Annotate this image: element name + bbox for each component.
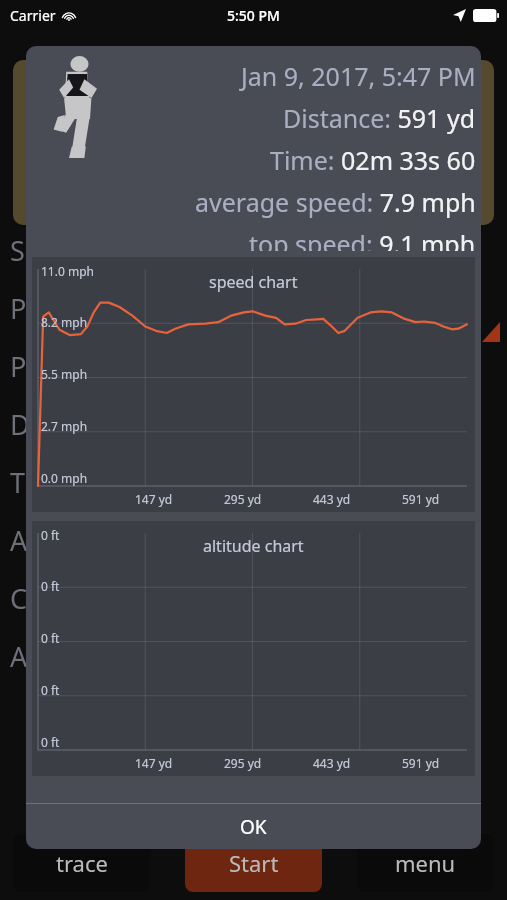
staticText: trace [56, 848, 108, 878]
staticText: 0 ft [41, 682, 60, 698]
staticText: 5:50 PM [227, 6, 280, 25]
staticText: Start [229, 848, 279, 878]
staticText: A [10, 522, 28, 559]
staticText: altitude chart [203, 535, 304, 557]
staticText: 2.7 mph [41, 418, 88, 434]
staticText: 8.2 mph [41, 314, 88, 330]
staticText: P [10, 290, 27, 327]
staticText: T [10, 464, 26, 501]
staticText: 295 yd [224, 755, 262, 771]
staticText: top speed: 9.1 mph [249, 227, 476, 251]
staticText: 295 yd [224, 491, 262, 507]
button[interactable]: menu [357, 834, 494, 892]
staticText: 0 ft [41, 527, 60, 543]
staticText: 11.0 mph [41, 263, 94, 279]
staticText: 591 yd [402, 755, 440, 771]
staticText: 591 yd [402, 491, 440, 507]
staticText: Carrier [10, 6, 56, 25]
button[interactable]: trace [13, 834, 150, 892]
staticText: 0 ft [41, 578, 60, 594]
staticText: Time: 02m 33s 60 [270, 143, 476, 177]
button[interactable]: OK [26, 804, 481, 849]
staticText: average speed: 7.9 mph [195, 185, 476, 219]
staticText: 0 ft [41, 734, 60, 750]
staticText: speed chart [209, 271, 298, 293]
staticText: 0.0 mph [41, 470, 88, 486]
staticText: 5.5 mph [41, 366, 88, 382]
staticText: 147 yd [135, 491, 173, 507]
staticText: OK [240, 814, 267, 840]
staticText: 147 yd [135, 755, 173, 771]
staticText: Jan 9, 2017, 5:47 PM [241, 59, 476, 93]
staticText: D [10, 406, 30, 443]
staticText: Distance: 591 yd [283, 101, 476, 135]
staticText: 0 ft [41, 630, 60, 646]
staticText: menu [395, 848, 456, 878]
button[interactable]: Start [185, 834, 322, 892]
staticText: P [10, 348, 27, 385]
staticText: 443 yd [313, 491, 351, 507]
staticText: 443 yd [313, 755, 351, 771]
staticText: S [10, 232, 25, 269]
staticText: A [10, 638, 28, 675]
staticText: C [10, 580, 28, 617]
